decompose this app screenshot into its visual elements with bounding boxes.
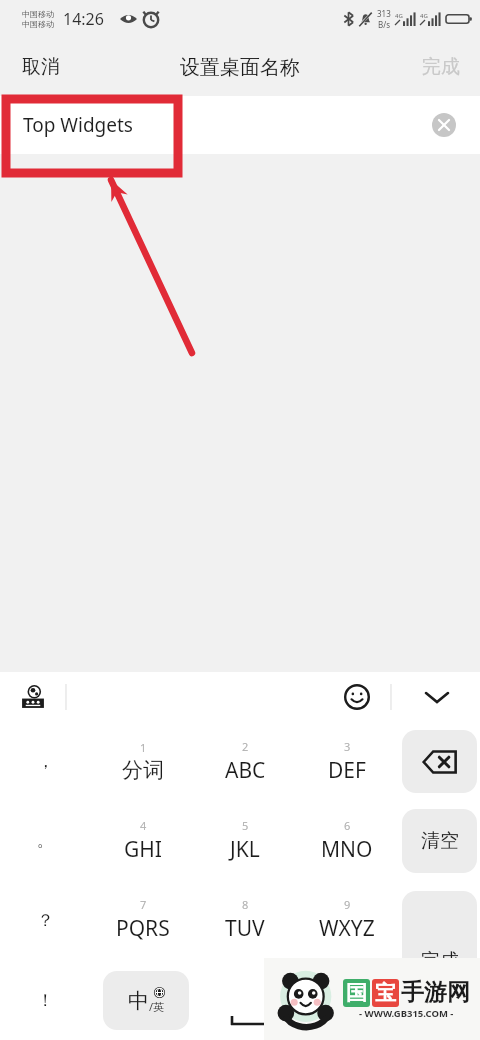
staticText: MNO xyxy=(321,835,373,864)
staticText: 中国移动 xyxy=(22,9,54,19)
staticText: ！ xyxy=(37,990,54,1011)
staticText: 5 xyxy=(242,818,249,833)
staticText: 手游网 xyxy=(401,978,470,1007)
button[interactable]: ！ xyxy=(0,960,92,1040)
button[interactable]: 清空 xyxy=(402,809,477,873)
staticText: 2 xyxy=(242,739,249,754)
button[interactable]: 输入法设置 xyxy=(18,682,48,712)
staticText: /英 xyxy=(149,999,165,1014)
staticText: 取消 xyxy=(22,55,60,79)
button[interactable]: 表情 xyxy=(342,682,372,712)
staticText: 313 xyxy=(377,8,391,19)
staticText: 4G xyxy=(420,12,428,20)
staticText: TUV xyxy=(225,914,265,943)
button[interactable]: 退格 xyxy=(402,730,477,793)
button[interactable]: 完成 xyxy=(402,41,480,93)
button[interactable]: 5 xyxy=(194,801,296,880)
staticText: 国 xyxy=(346,980,367,1006)
button[interactable]: 。 xyxy=(0,801,92,880)
button[interactable]: ？ xyxy=(0,880,92,960)
button[interactable]: 8 xyxy=(194,880,296,960)
button[interactable]: 取消 xyxy=(0,41,82,93)
staticText: JKL xyxy=(230,835,260,864)
staticText: 中 xyxy=(128,988,149,1014)
button[interactable]: ， xyxy=(0,722,92,801)
staticText: GHI xyxy=(124,835,162,864)
staticText: ？ xyxy=(37,910,54,931)
button[interactable]: 收起键盘 xyxy=(420,680,454,714)
button[interactable]: 空格 xyxy=(231,971,366,1030)
button[interactable]: 中 xyxy=(103,971,189,1030)
staticText: 。 xyxy=(37,830,54,851)
staticText: 1 xyxy=(140,740,147,755)
staticText: 4 xyxy=(140,818,147,833)
staticText: ABC xyxy=(225,756,266,785)
staticText: 清空 xyxy=(421,829,459,853)
button[interactable]: 6 xyxy=(296,801,398,880)
staticText: 6 xyxy=(344,818,351,833)
staticText: 完成 xyxy=(421,949,459,973)
button[interactable]: 9 xyxy=(296,880,398,960)
staticText: 14:26 xyxy=(63,8,104,30)
staticText: 宝 xyxy=(375,980,396,1006)
button[interactable]: 3 xyxy=(296,722,398,801)
staticText: 0 xyxy=(295,976,302,991)
button[interactable]: 清除 xyxy=(432,113,456,137)
staticText: B/s xyxy=(378,19,391,30)
staticText: 7 xyxy=(140,897,147,912)
staticText: 分词 xyxy=(122,757,164,783)
button[interactable]: 完成 xyxy=(402,891,477,1031)
button[interactable]: 4 xyxy=(92,801,194,880)
staticText: PQRS xyxy=(116,914,170,943)
staticText: Top Widgets xyxy=(23,112,133,138)
staticText: 4G xyxy=(395,12,403,20)
staticText: ， xyxy=(37,751,54,772)
staticText: 3 xyxy=(344,739,351,754)
staticText: 中国移动 xyxy=(22,19,54,29)
staticText: DEF xyxy=(328,756,366,785)
staticText: 设置桌面名称 xyxy=(180,55,300,80)
staticText: WXYZ xyxy=(319,914,375,943)
staticText: - WWW.GB315.COM - xyxy=(359,1007,454,1020)
button[interactable]: 2 xyxy=(194,722,296,801)
button[interactable]: 1 xyxy=(92,722,194,801)
staticText: 9 xyxy=(344,897,351,912)
button[interactable]: 7 xyxy=(92,880,194,960)
staticText: 8 xyxy=(242,897,249,912)
staticText: 完成 xyxy=(422,55,460,79)
